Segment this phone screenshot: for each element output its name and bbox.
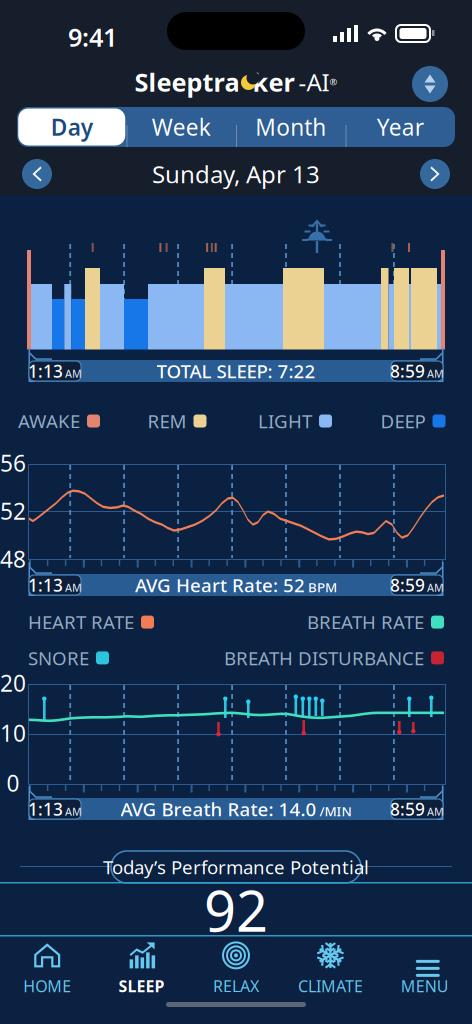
staticText: AM [427, 366, 444, 381]
staticText: MENU [401, 975, 449, 997]
staticText: 8:59 [390, 573, 425, 596]
staticText: /MIN [316, 802, 351, 820]
staticText: AM [427, 580, 444, 595]
staticText: CLIMATE [298, 975, 363, 997]
button[interactable]: Week [126, 107, 236, 147]
button[interactable]: Previous day [18, 155, 56, 193]
staticText: DEEP [380, 409, 425, 433]
staticText: HOME [23, 975, 71, 997]
staticText: BPM [305, 578, 337, 596]
staticText: Sleeptra [134, 65, 239, 99]
staticText: AVG Heart Rate: 52 [135, 573, 305, 597]
button[interactable]: Month [236, 107, 345, 147]
staticText: RELAX [213, 975, 259, 997]
staticText: AM [427, 804, 444, 819]
button[interactable]: CLIMATE [283, 939, 378, 999]
button[interactable]: Year [345, 107, 455, 147]
staticText: REM [147, 409, 186, 433]
staticText: 1:13 [28, 359, 63, 382]
staticText: -AI [294, 66, 329, 98]
staticText: BREATH DISTURBANCE [224, 645, 424, 670]
staticText: AM [65, 580, 82, 595]
staticText: Week [152, 112, 211, 142]
staticText: AM [65, 804, 82, 819]
staticText: 8:59 [390, 797, 425, 820]
staticText: 10 [0, 718, 26, 748]
button[interactable]: HOME [0, 939, 94, 999]
staticText: 20 [0, 668, 26, 698]
button[interactable]: RELAX [189, 939, 283, 999]
staticText: ® [329, 76, 337, 88]
staticText: 52 [0, 496, 26, 526]
staticText: BREATH RATE [307, 610, 424, 634]
staticText: SLEEP [119, 975, 165, 997]
staticText: AVG Breath Rate: 14.0 [120, 797, 316, 821]
staticText: 8:59 [390, 359, 425, 382]
staticText: AWAKE [18, 409, 80, 433]
staticText: ker [252, 65, 294, 99]
staticText: 1:13 [28, 573, 63, 596]
staticText: Month [255, 112, 326, 142]
staticText: TOTAL SLEEP: 7:22 [156, 359, 315, 383]
button[interactable]: Sort [408, 62, 452, 106]
staticText: Day [51, 112, 93, 142]
staticText: LIGHT [258, 409, 312, 433]
button[interactable]: MENU [378, 939, 472, 999]
button[interactable]: Next day [416, 155, 454, 193]
staticText: 56 [0, 448, 26, 478]
staticText: 92 [204, 873, 268, 947]
staticText: Sunday, Apr 13 [152, 158, 320, 190]
staticText: 0 [6, 768, 19, 798]
staticText: AM [65, 366, 82, 381]
staticText: SNORE [28, 645, 89, 670]
button[interactable]: SLEEP [94, 939, 189, 999]
button[interactable]: Day [17, 107, 126, 147]
staticText: 1:13 [28, 797, 63, 820]
staticText: 9:41 [68, 20, 117, 54]
staticText: Today’s Performance Potential [103, 855, 369, 879]
staticText: Year [377, 112, 424, 142]
button[interactable]: Today’s Performance Potential [109, 849, 363, 885]
staticText: HEART RATE [28, 610, 134, 634]
staticText: 48 [0, 544, 26, 574]
